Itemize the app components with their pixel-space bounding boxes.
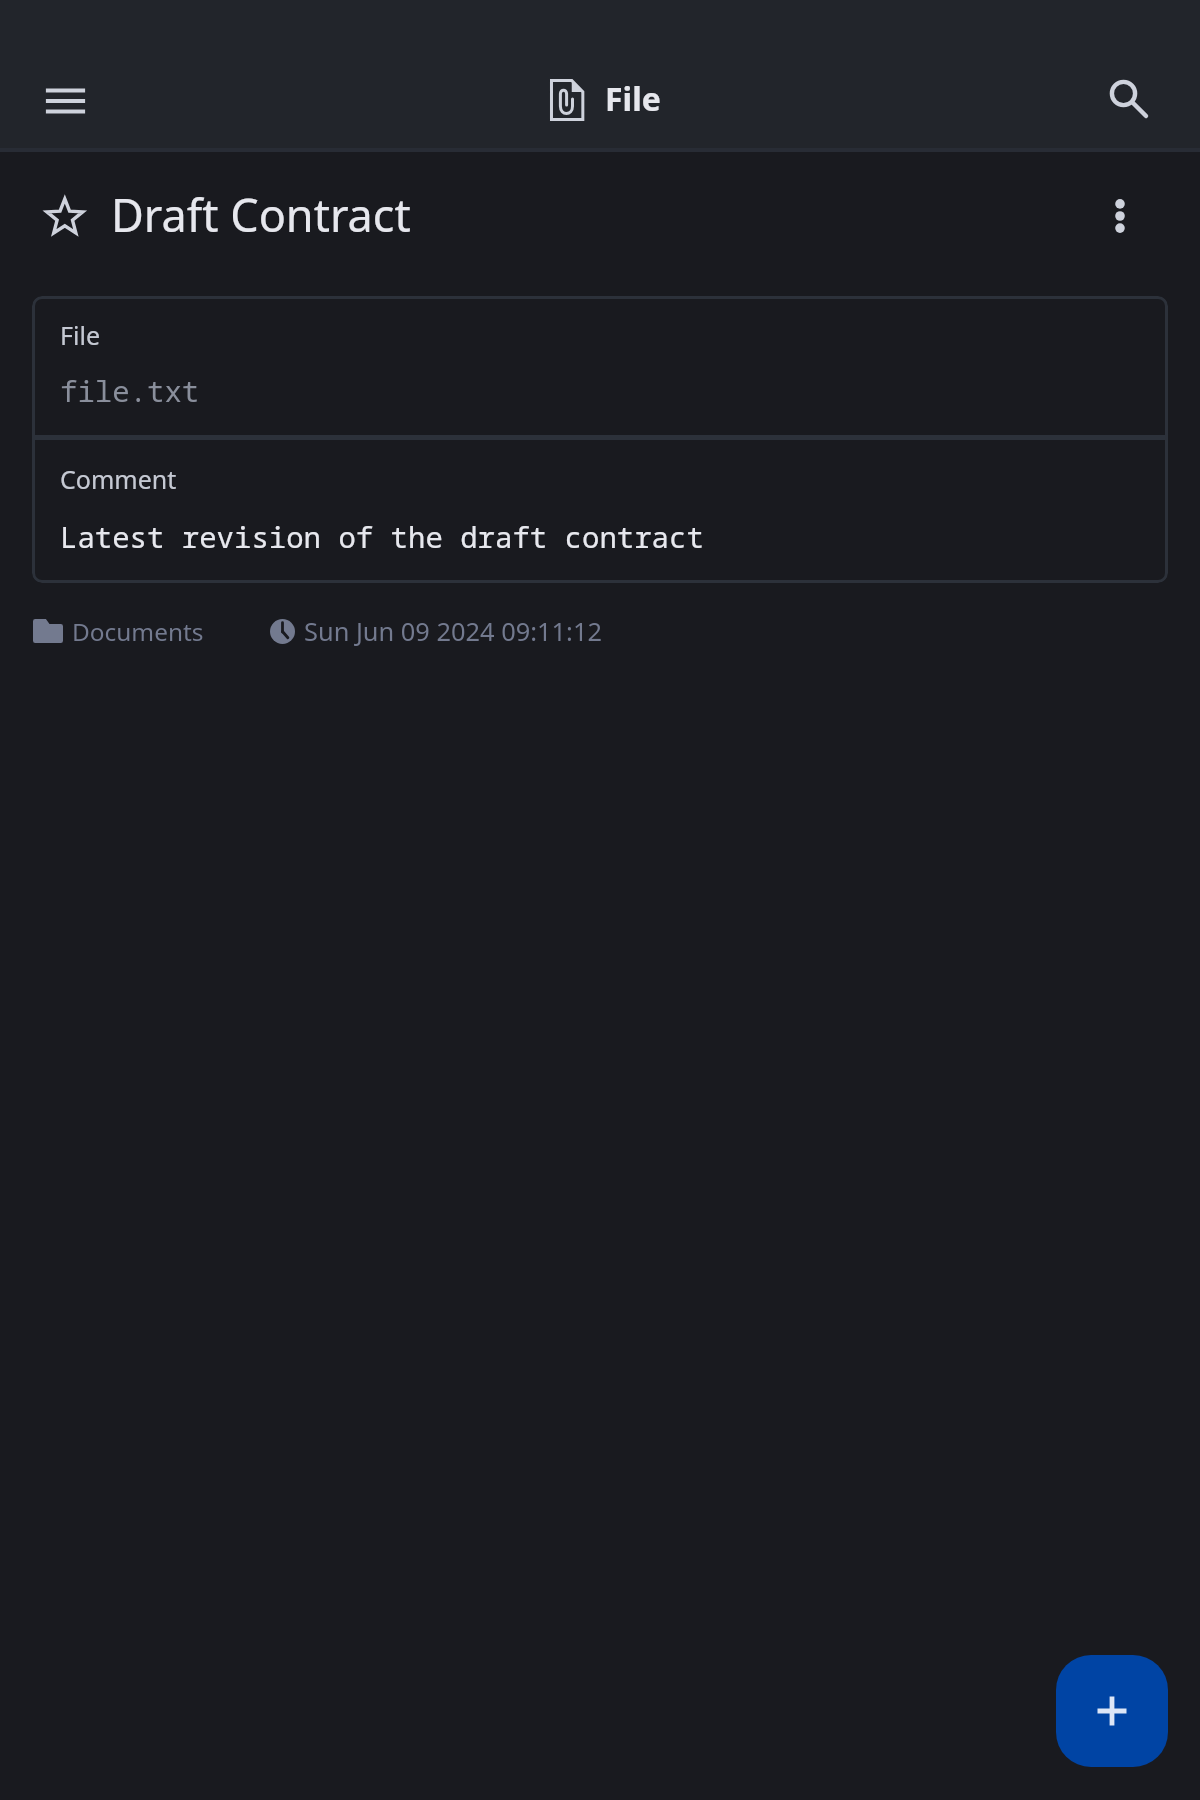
- button[interactable]: File: [32, 296, 1168, 435]
- button[interactable]: Add: [1056, 1655, 1168, 1767]
- staticText: Documents: [72, 615, 204, 648]
- staticText: Comment: [60, 462, 177, 496]
- staticText: Latest revision of the draft contract: [60, 517, 704, 556]
- staticText: Sun Jun 09 2024 09:11:12: [304, 614, 602, 649]
- button[interactable]: Search: [1060, 50, 1200, 148]
- button[interactable]: Menu: [0, 50, 128, 148]
- staticText: File: [60, 318, 100, 352]
- button[interactable]: Favorite: [0, 152, 128, 276]
- staticText: File: [605, 77, 661, 121]
- staticText: file.txt: [60, 371, 200, 410]
- button[interactable]: Comment: [32, 440, 1168, 583]
- button[interactable]: More options: [1065, 152, 1175, 276]
- staticText: Draft Contract: [111, 184, 411, 245]
